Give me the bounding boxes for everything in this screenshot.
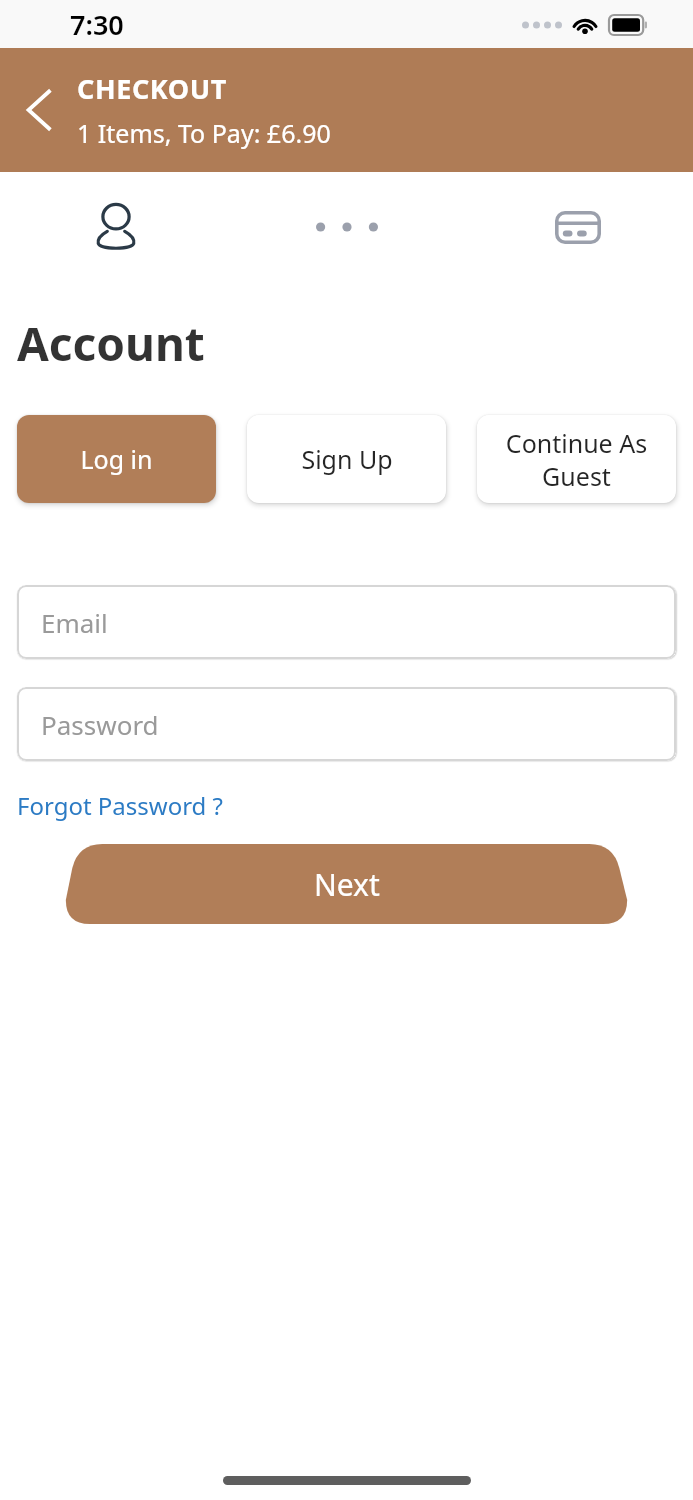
button[interactable]: Forgot Password ?: [17, 789, 224, 822]
button[interactable]: Password: [17, 687, 676, 761]
staticText: CHECKOUT: [77, 70, 227, 107]
button[interactable]: Account step: [87, 198, 145, 256]
staticText: Next: [314, 864, 380, 905]
staticText: 1 Items, To Pay: £6.90: [77, 116, 331, 150]
staticText: Email: [41, 605, 108, 640]
staticText: Continue As Guest: [483, 426, 670, 493]
button[interactable]: Sign Up: [247, 415, 446, 503]
button[interactable]: Payment step: [549, 198, 607, 256]
staticText: Account: [17, 312, 205, 375]
staticText: Log in: [80, 442, 153, 476]
staticText: 7:30: [70, 6, 124, 43]
button[interactable]: Next: [0, 844, 693, 924]
button[interactable]: Email: [17, 585, 676, 659]
button[interactable]: Log in: [17, 415, 216, 503]
button[interactable]: Continue As Guest: [477, 415, 676, 503]
button[interactable]: Back: [14, 84, 66, 136]
staticText: Password: [41, 707, 159, 742]
staticText: Sign Up: [301, 442, 393, 476]
